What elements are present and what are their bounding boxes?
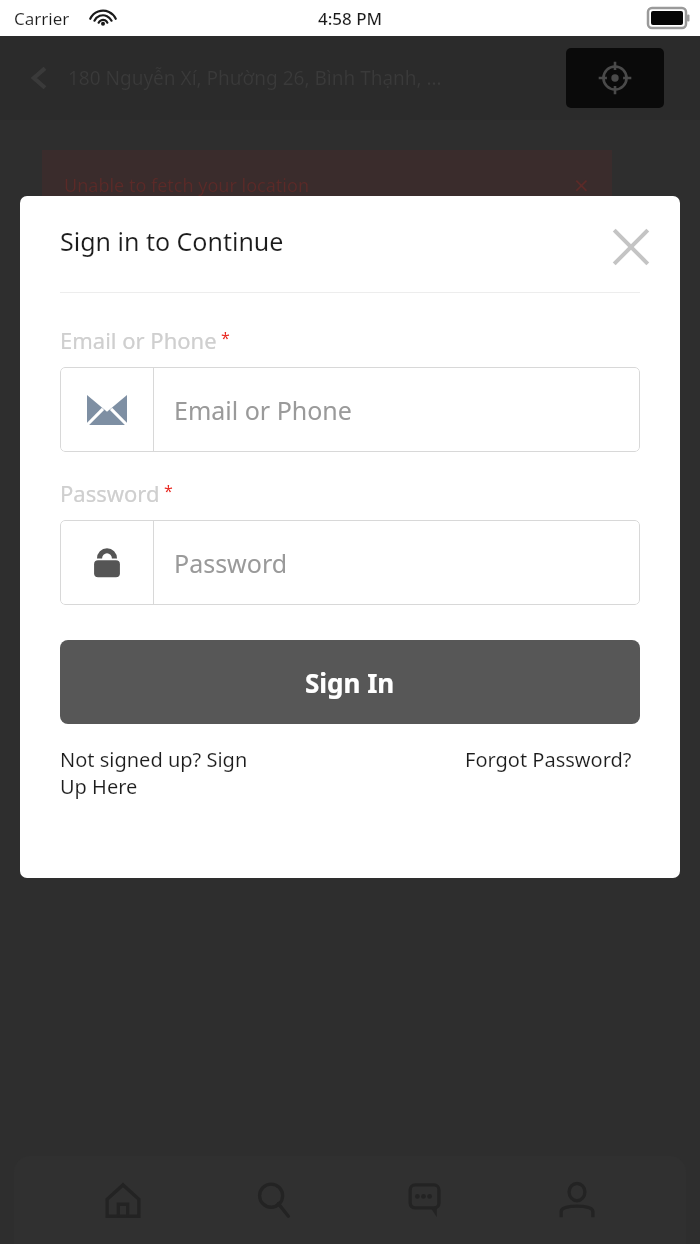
button[interactable]: Back [22, 61, 56, 95]
staticText: Email or Phone [60, 325, 217, 355]
staticText: Unable to fetch your location [64, 173, 310, 198]
staticText: Password [174, 546, 288, 580]
staticText: Forgot Password? [465, 746, 632, 773]
staticText: Carrier [14, 7, 70, 30]
staticText: Sign in to Continue [60, 224, 284, 258]
button[interactable]: Sign In [60, 640, 640, 724]
button[interactable]: Close [604, 220, 658, 274]
staticText: Sign In [305, 665, 395, 700]
button[interactable]: Not signed up? Sign Up Here [60, 746, 260, 800]
button[interactable]: Email or Phone [60, 367, 640, 452]
staticText: Not signed up? Sign Up Here [60, 746, 260, 800]
staticText: * [164, 480, 173, 502]
staticText: Email or Phone [174, 393, 352, 427]
button[interactable]: Password [60, 520, 640, 605]
staticText: ✕ [573, 174, 590, 197]
staticText: 4:58 PM [318, 7, 383, 30]
button[interactable]: Messages [383, 1165, 469, 1235]
staticText: Password [60, 478, 160, 508]
button[interactable]: Use current location [566, 48, 664, 108]
button[interactable]: Forgot Password? [465, 746, 632, 773]
staticText: * [221, 327, 230, 349]
staticText: 180 Nguyễn Xí, Phường 26, Bình Thạnh, … [68, 65, 670, 91]
button[interactable]: Home [80, 1165, 166, 1235]
